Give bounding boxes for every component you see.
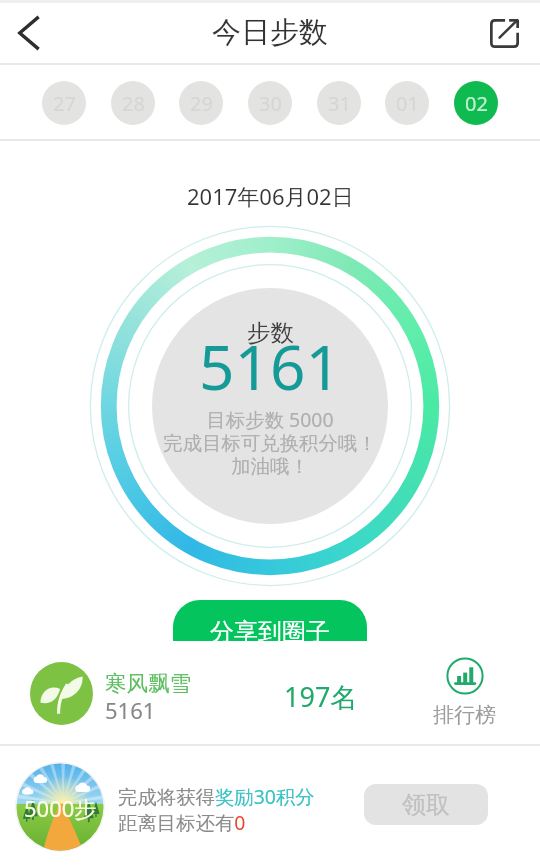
button[interactable]: 29	[179, 81, 223, 125]
staticText: 5000步	[24, 793, 97, 823]
staticText: 领取	[402, 790, 450, 820]
button[interactable]: 分享到圈子	[173, 600, 367, 641]
button[interactable]: 27	[42, 81, 86, 125]
staticText: 分享到圈子	[210, 617, 330, 641]
staticText: 01	[396, 90, 419, 117]
staticText: 27	[53, 90, 76, 117]
button[interactable]: 30	[248, 81, 292, 125]
button[interactable]: Back	[0, 2, 58, 64]
staticText: 完成将获得奖励30积分	[118, 783, 315, 809]
button[interactable]: 领取	[364, 784, 488, 825]
button[interactable]: 02	[454, 81, 498, 125]
staticText: 2017年06月02日	[187, 181, 354, 211]
staticText: 步数	[247, 318, 294, 348]
button[interactable]: Share	[475, 2, 533, 64]
staticText: 排行榜	[433, 702, 496, 728]
staticText: 31	[328, 90, 351, 117]
staticText: 28	[122, 90, 145, 117]
button[interactable]: 01	[385, 81, 429, 125]
button[interactable]	[30, 662, 93, 725]
staticText: 29	[190, 90, 213, 117]
staticText: 距离目标还有0	[118, 809, 246, 835]
staticText: 今日步数	[212, 14, 328, 51]
button[interactable]: 28	[111, 81, 155, 125]
staticText: 02	[465, 90, 488, 117]
staticText: 5161	[199, 324, 341, 408]
staticText: 目标步数 5000 完成目标可兑换积分哦！ 加油哦！	[163, 406, 377, 479]
staticText: 寒风飘雪	[105, 670, 192, 697]
staticText: 197名	[284, 678, 358, 715]
staticText: 30	[259, 90, 282, 117]
staticText: 5161	[105, 695, 156, 725]
button[interactable]: 排行榜	[426, 657, 503, 728]
button[interactable]: 31	[317, 81, 361, 125]
